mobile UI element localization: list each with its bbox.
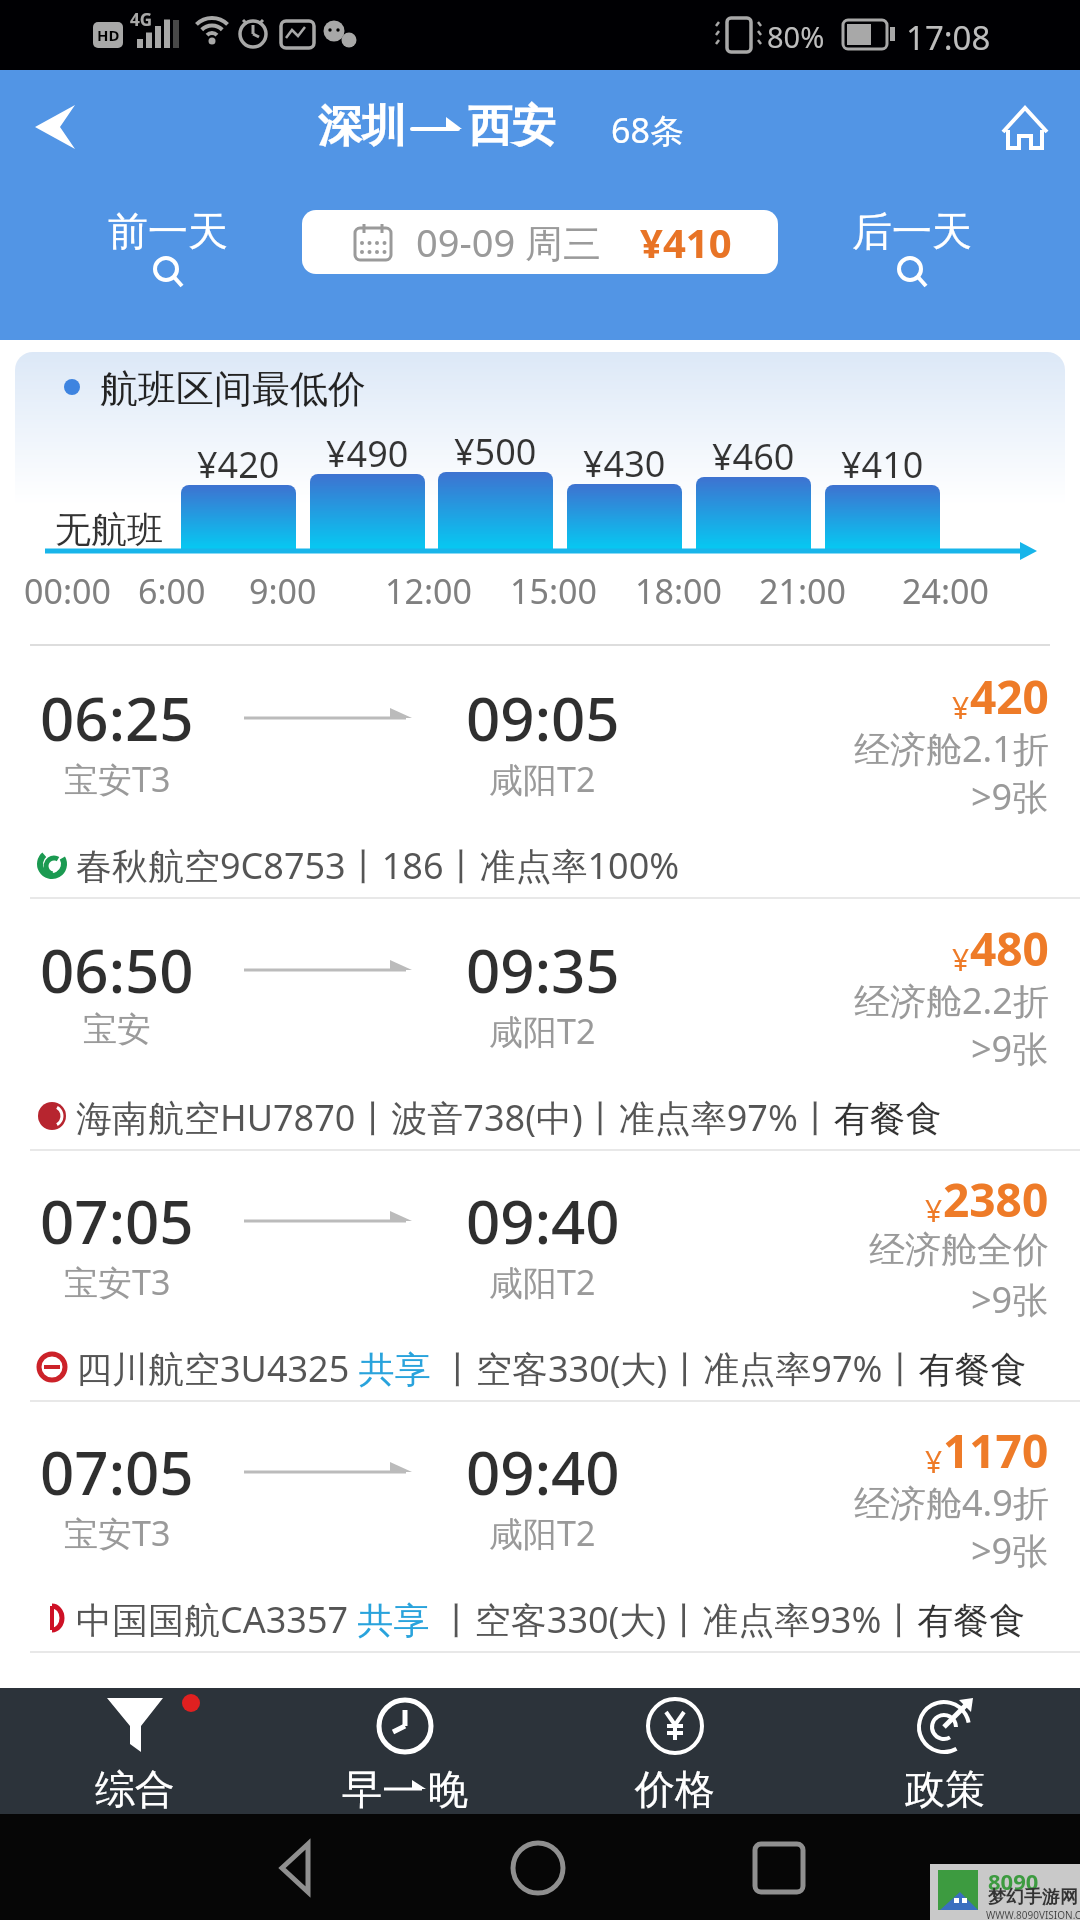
staticText: ¥410 bbox=[640, 215, 732, 269]
staticText: 经济舱2.2折 bbox=[854, 976, 1049, 1025]
staticText: ¥ bbox=[925, 1441, 943, 1482]
button[interactable] bbox=[751, 1840, 807, 1896]
staticText: 西安 bbox=[468, 99, 556, 154]
staticText: 宝安T3 bbox=[64, 756, 171, 802]
button[interactable]: 综合 bbox=[0, 1688, 270, 1814]
staticText: 420 bbox=[970, 665, 1049, 728]
staticText: 17:08 bbox=[906, 15, 991, 60]
button[interactable]: 07:05 bbox=[0, 1151, 1080, 1402]
staticText: >9张 bbox=[971, 1275, 1049, 1324]
staticText: ¥ bbox=[925, 1190, 943, 1231]
staticText: ¥ bbox=[952, 687, 970, 728]
staticText: 四川航空3U4325 共享 丨空客330(大)丨准点率97%丨有餐食 bbox=[76, 1344, 1027, 1393]
staticText: 航班区间最低价 bbox=[100, 365, 366, 413]
staticText: 1170 bbox=[943, 1419, 1049, 1482]
staticText: 经济舱4.9折 bbox=[854, 1478, 1049, 1527]
staticText: HD bbox=[97, 25, 120, 45]
staticText: 海南航空HU7870丨波音738(中)丨准点率97%丨有餐食 bbox=[76, 1093, 942, 1142]
staticText: ¥460 bbox=[712, 432, 795, 481]
staticText: 经济舱全价 bbox=[869, 1227, 1049, 1272]
staticText: ¥490 bbox=[326, 429, 409, 478]
staticText: 80% bbox=[767, 17, 825, 56]
button[interactable]: 价格 bbox=[540, 1688, 810, 1814]
staticText: ¥430 bbox=[583, 439, 666, 488]
staticText: 政策 bbox=[905, 1764, 985, 1814]
button[interactable]: 后一天 bbox=[852, 206, 972, 292]
staticText: 4G bbox=[130, 8, 153, 31]
staticText: WWW.8090VISION.COM bbox=[986, 1908, 1080, 1920]
button[interactable] bbox=[510, 1840, 566, 1896]
staticText: ¥ bbox=[952, 939, 970, 980]
staticText: 09:40 bbox=[466, 1180, 620, 1262]
staticText: 咸阳T2 bbox=[489, 1510, 596, 1556]
staticText: 后一天 bbox=[852, 206, 972, 256]
staticText: >9张 bbox=[971, 1024, 1049, 1073]
staticText: 深圳 bbox=[318, 99, 406, 154]
staticText: 春秋航空9C8753丨186丨准点率100% bbox=[76, 841, 680, 890]
button[interactable]: 政策 bbox=[810, 1688, 1080, 1814]
staticText: 09-09 周三 bbox=[416, 216, 602, 268]
button[interactable]: 09-09 周三 bbox=[302, 210, 778, 274]
staticText: 2380 bbox=[943, 1168, 1049, 1231]
staticText: 中国国航CA3357 共享 丨空客330(大)丨准点率93%丨有餐食 bbox=[76, 1595, 1026, 1644]
staticText: ¥420 bbox=[197, 440, 280, 489]
staticText: 06:25 bbox=[40, 677, 194, 759]
staticText: 经济舱2.1折 bbox=[854, 724, 1049, 773]
staticText: 12:00 bbox=[385, 568, 472, 614]
button[interactable]: 06:50 bbox=[0, 900, 1080, 1151]
button[interactable]: 前一天 bbox=[108, 206, 228, 292]
staticText: ¥410 bbox=[841, 440, 924, 489]
staticText: 68条 bbox=[611, 107, 684, 153]
button[interactable] bbox=[270, 1840, 326, 1896]
staticText: 9:00 bbox=[249, 568, 317, 614]
staticText: 宝安T3 bbox=[64, 1259, 171, 1305]
button[interactable] bbox=[1000, 102, 1050, 152]
staticText: 价格 bbox=[635, 1764, 715, 1814]
staticText: 早 bbox=[342, 1764, 382, 1810]
staticText: 24:00 bbox=[902, 568, 989, 614]
staticText: 宝安T3 bbox=[64, 1510, 171, 1556]
staticText: 宝安 bbox=[83, 1008, 151, 1051]
staticText: 07:05 bbox=[40, 1431, 194, 1513]
staticText: 09:05 bbox=[466, 677, 620, 759]
button[interactable]: 06:25 bbox=[0, 648, 1080, 899]
staticText: 00:00 bbox=[24, 568, 111, 614]
staticText: 咸阳T2 bbox=[489, 1008, 596, 1054]
button[interactable]: 早 bbox=[270, 1688, 540, 1814]
staticText: 07:05 bbox=[40, 1180, 194, 1262]
staticText: 8090 bbox=[988, 1866, 1039, 1896]
staticText: 18:00 bbox=[635, 568, 722, 614]
staticText: 前一天 bbox=[108, 206, 228, 256]
staticText: 咸阳T2 bbox=[489, 1259, 596, 1305]
staticText: 15:00 bbox=[510, 568, 597, 614]
staticText: 无航班 bbox=[55, 507, 163, 552]
staticText: 09:40 bbox=[466, 1431, 620, 1513]
staticText: 480 bbox=[970, 917, 1049, 980]
button[interactable] bbox=[30, 102, 80, 152]
staticText: 梦幻手游网 bbox=[988, 1886, 1078, 1909]
staticText: 09:35 bbox=[466, 929, 620, 1011]
staticText: ¥500 bbox=[454, 427, 537, 476]
staticText: 06:50 bbox=[40, 929, 194, 1011]
staticText: 21:00 bbox=[759, 568, 846, 614]
staticText: 咸阳T2 bbox=[489, 756, 596, 802]
staticText: >9张 bbox=[971, 772, 1049, 821]
staticText: 晚 bbox=[428, 1764, 468, 1810]
staticText: >9张 bbox=[971, 1526, 1049, 1575]
staticText: 6:00 bbox=[138, 568, 206, 614]
button[interactable]: 07:05 bbox=[0, 1402, 1080, 1653]
staticText: 综合 bbox=[95, 1764, 175, 1814]
